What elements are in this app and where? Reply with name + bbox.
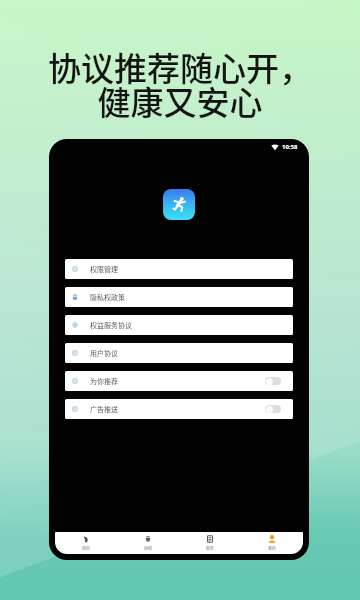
staticText: 隐私权政策 bbox=[90, 292, 125, 302]
button[interactable]: 权益服务协议 bbox=[65, 315, 293, 335]
button[interactable]: 报告 bbox=[179, 532, 241, 554]
staticText: 10:58 bbox=[282, 143, 298, 151]
button[interactable]: 用户协议 bbox=[65, 343, 293, 363]
staticText: 首页 bbox=[82, 545, 90, 551]
staticText: 用户协议 bbox=[90, 348, 118, 358]
button[interactable]: Toggle 为你推荐 bbox=[265, 377, 281, 385]
staticText: 报告 bbox=[206, 545, 214, 551]
button[interactable]: 运动 bbox=[117, 532, 179, 554]
button[interactable]: 我的 bbox=[241, 532, 303, 554]
staticText: 运动 bbox=[144, 545, 152, 551]
button[interactable]: 隐私权政策 bbox=[65, 287, 293, 307]
button[interactable]: 为你推荐 bbox=[65, 371, 293, 391]
button[interactable]: Toggle 广告推送 bbox=[265, 405, 281, 413]
button[interactable]: 权限管理 bbox=[65, 259, 293, 279]
staticText: 为你推荐 bbox=[90, 376, 118, 386]
staticText: 权益服务协议 bbox=[90, 320, 132, 330]
staticText: 协议推荐随心开， 健康又安心 bbox=[0, 43, 360, 125]
staticText: 我的 bbox=[268, 545, 276, 551]
staticText: 广告推送 bbox=[90, 404, 118, 414]
button[interactable]: 首页 bbox=[55, 532, 117, 554]
button[interactable]: 广告推送 bbox=[65, 399, 293, 419]
staticText: 权限管理 bbox=[90, 264, 118, 274]
